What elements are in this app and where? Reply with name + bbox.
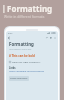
button[interactable]: https://example.com/formatting bbox=[9, 70, 44, 73]
button[interactable]: Italics for right columns ? bbox=[9, 60, 55, 63]
staticText: Formatting bbox=[9, 41, 34, 47]
button[interactable]: Create code block bbox=[9, 76, 29, 81]
staticText: Create code block bbox=[10, 77, 28, 80]
staticText: Formatting bbox=[7, 3, 53, 14]
staticText: 9:41 bbox=[8, 32, 13, 35]
button[interactable]: Back bbox=[7, 36, 11, 40]
staticText: Links bbox=[9, 66, 16, 69]
button[interactable]: More options bbox=[53, 36, 57, 40]
button[interactable]: Formatting options bbox=[49, 36, 53, 40]
button[interactable]: # This can be bold bbox=[9, 54, 35, 58]
staticText: Italics for right columns ? bbox=[12, 60, 41, 63]
staticText: Write in different formats bbox=[4, 14, 45, 19]
button[interactable]: Undo bbox=[45, 36, 49, 40]
staticText: Last edited 2 mins ago bbox=[9, 48, 32, 51]
